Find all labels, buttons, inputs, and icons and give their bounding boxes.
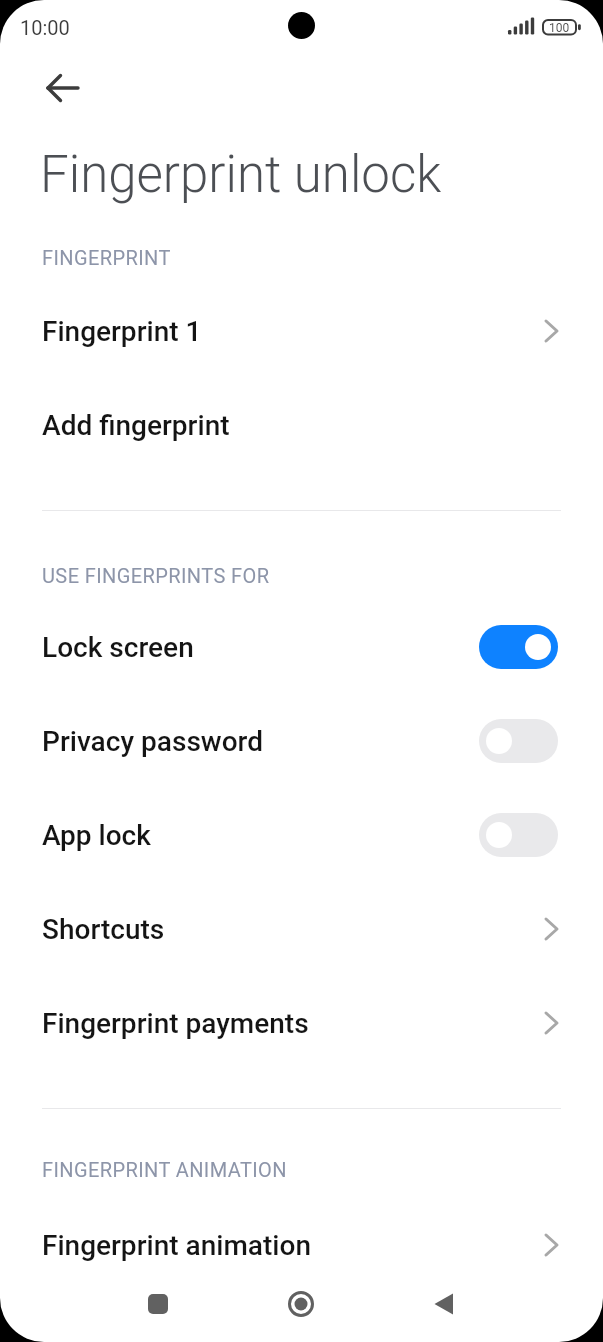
button[interactable] [479,625,558,669]
button[interactable] [479,719,558,763]
button[interactable] [38,66,88,110]
button[interactable]: Privacy password [0,694,603,788]
staticText: USE FINGERPRINTS FOR [42,564,270,587]
staticText: 10:00 [20,16,70,39]
staticText: Fingerprint unlock [40,145,442,205]
button[interactable] [138,1284,178,1324]
staticText: Fingerprint payments [42,1007,309,1040]
staticText: Lock screen [42,631,194,664]
button[interactable]: Add fingerprint [0,378,603,472]
button[interactable] [281,1284,321,1324]
staticText: FINGERPRINT [42,246,171,269]
button[interactable]: App lock [0,788,603,882]
button[interactable] [424,1284,464,1324]
button[interactable]: Shortcuts [0,882,603,976]
button[interactable]: Fingerprint payments [0,976,603,1070]
staticText: Shortcuts [42,913,165,946]
button[interactable] [479,813,558,857]
staticText: Add fingerprint [42,409,230,442]
staticText: Fingerprint 1 [42,315,202,348]
staticText: FINGERPRINT ANIMATION [42,1158,287,1181]
button[interactable]: Fingerprint 1 [0,284,603,378]
staticText: App lock [42,819,151,852]
button[interactable]: Lock screen [0,600,603,694]
staticText: Fingerprint animation [42,1229,311,1262]
staticText: 100 [549,21,570,35]
button[interactable]: Fingerprint animation [0,1198,603,1292]
staticText: Privacy password [42,725,264,758]
